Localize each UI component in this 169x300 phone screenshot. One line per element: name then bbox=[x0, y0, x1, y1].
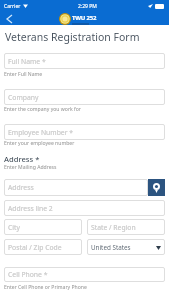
staticText: Address bbox=[8, 183, 34, 192]
staticText: Address line 2 bbox=[8, 204, 53, 213]
staticText: Enter Mailing Address bbox=[4, 164, 57, 171]
button[interactable]: City bbox=[4, 219, 82, 235]
staticText: State / Region bbox=[91, 223, 136, 232]
button[interactable]: State / Region bbox=[87, 219, 165, 235]
button[interactable]: Address bbox=[4, 179, 148, 196]
staticText: Enter your employee number bbox=[4, 140, 75, 147]
staticText: City bbox=[8, 223, 20, 232]
staticText: Full Name * bbox=[8, 57, 46, 66]
button[interactable]: Company bbox=[4, 89, 165, 105]
button[interactable]: United States bbox=[87, 239, 165, 255]
button[interactable]: Postal / Zip Code bbox=[4, 239, 82, 255]
button[interactable]: Use current location bbox=[148, 179, 165, 196]
button[interactable]: Employee Number * bbox=[4, 124, 165, 140]
staticText: Carrier bbox=[4, 3, 21, 10]
button[interactable]: Back bbox=[0, 12, 18, 25]
staticText: Address * bbox=[4, 154, 40, 164]
staticText: Postal / Zip Code bbox=[8, 243, 62, 252]
staticText: TWU 252 bbox=[72, 14, 97, 22]
staticText: 2:29 PM bbox=[78, 3, 97, 10]
staticText: Cell Phone * bbox=[8, 270, 48, 279]
staticText: Veterans Registration Form bbox=[5, 30, 140, 44]
button[interactable]: Address line 2 bbox=[4, 200, 165, 216]
staticText: Enter the company you work for bbox=[4, 106, 81, 113]
staticText: Enter Cell Phone or Primary Phone bbox=[4, 284, 87, 291]
staticText: Company bbox=[8, 93, 39, 102]
staticText: Employee Number * bbox=[8, 128, 73, 137]
button[interactable]: Full Name * bbox=[4, 53, 165, 69]
staticText: United States bbox=[91, 243, 131, 252]
staticText: Enter Full Name bbox=[4, 71, 43, 78]
button[interactable]: Cell Phone * bbox=[4, 267, 165, 282]
